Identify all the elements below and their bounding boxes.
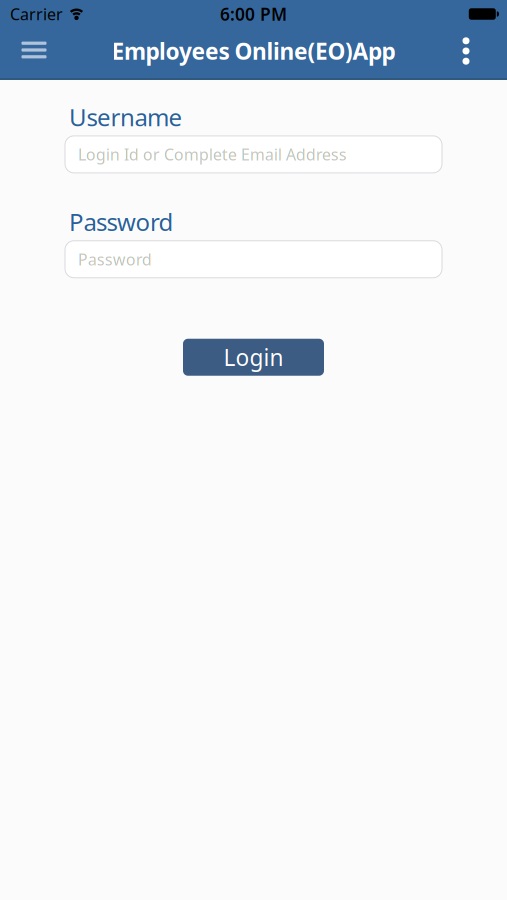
button[interactable]: Login: [183, 339, 324, 376]
staticText: Password: [69, 206, 173, 238]
staticText: Carrier: [10, 3, 63, 25]
staticText: Username: [69, 101, 182, 133]
staticText: 6:00 PM: [220, 2, 287, 25]
button[interactable]: More options: [450, 33, 482, 73]
staticText: Login Id or Complete Email Address: [78, 144, 347, 165]
button[interactable]: Menu: [12, 33, 56, 73]
staticText: Employees Online(EO)App: [111, 36, 395, 66]
staticText: Login: [223, 342, 283, 372]
secureTextField[interactable]: Password: [78, 249, 442, 270]
textField[interactable]: Login Id or Complete Email Address: [78, 144, 442, 165]
staticText: Password: [78, 249, 152, 270]
